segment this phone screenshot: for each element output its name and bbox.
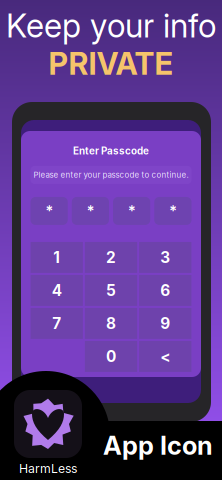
button[interactable]: 9	[139, 308, 191, 339]
button[interactable]: 5	[85, 275, 137, 306]
staticText: HarmLess	[19, 461, 77, 476]
staticText: 2	[106, 248, 116, 267]
staticText: 9	[160, 314, 170, 333]
staticText: 6	[160, 281, 170, 300]
button[interactable]: 6	[139, 275, 191, 306]
staticText: *	[169, 202, 177, 220]
button[interactable]: <	[139, 341, 191, 372]
staticText: 0	[106, 347, 116, 366]
staticText: App Icon	[103, 430, 213, 461]
staticText: Enter Passcode	[73, 145, 149, 157]
button[interactable]	[31, 341, 83, 372]
button[interactable]: 4	[31, 275, 83, 306]
staticText: PRIVATE	[48, 45, 173, 82]
button[interactable]: 1	[31, 242, 83, 273]
staticText: 7	[52, 314, 61, 333]
staticText: 1	[53, 248, 60, 267]
button[interactable]: 7	[31, 308, 83, 339]
staticText: 4	[52, 281, 62, 300]
staticText: *	[86, 202, 94, 220]
button[interactable]: 3	[139, 242, 191, 273]
staticText: 8	[106, 314, 116, 333]
staticText: Please enter your passcode to continue.	[33, 170, 188, 180]
staticText: *	[128, 202, 136, 220]
staticText: *	[45, 202, 53, 220]
button[interactable]: 2	[85, 242, 137, 273]
button[interactable]: 0	[85, 341, 137, 372]
staticText: 3	[160, 248, 170, 267]
staticText: <	[160, 347, 170, 366]
staticText: Keep your info	[6, 6, 216, 45]
staticText: 5	[106, 281, 116, 300]
button[interactable]: App Icon	[103, 430, 213, 461]
button[interactable]: 8	[85, 308, 137, 339]
